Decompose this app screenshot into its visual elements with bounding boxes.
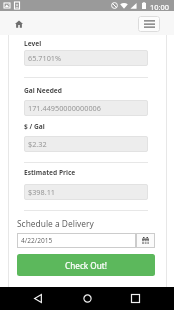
- staticText: $2.32: [28, 139, 47, 149]
- staticText: Check Out!: [65, 260, 107, 271]
- staticText: Estimated Price: [24, 168, 76, 177]
- staticText: Level: [24, 39, 42, 48]
- staticText: 10:00: [150, 2, 169, 12]
- staticText: $398.11: [28, 187, 55, 197]
- staticText: $ / Gal: [24, 122, 45, 131]
- button[interactable]: Home: [12, 17, 26, 31]
- staticText: Schedule a Delivery: [17, 218, 94, 229]
- staticText: 4/22/2015: [21, 236, 53, 245]
- button[interactable]: 4/22/2015: [17, 233, 136, 248]
- button[interactable]: Home: [77, 288, 97, 308]
- button[interactable]: Check Out!: [17, 254, 155, 276]
- button[interactable]: $2.32: [24, 136, 148, 152]
- button[interactable]: 65.7101%: [24, 50, 148, 66]
- staticText: Gal Needed: [24, 86, 62, 95]
- button[interactable]: Recent apps: [125, 288, 145, 308]
- button[interactable]: Pick date: [136, 233, 155, 248]
- staticText: 171.44950000000006: [28, 103, 101, 113]
- button[interactable]: Menu: [138, 16, 160, 32]
- staticText: 65.7101%: [28, 53, 62, 63]
- button[interactable]: $398.11: [24, 184, 148, 200]
- button[interactable]: 171.44950000000006: [24, 100, 148, 116]
- button[interactable]: Back: [28, 288, 48, 308]
